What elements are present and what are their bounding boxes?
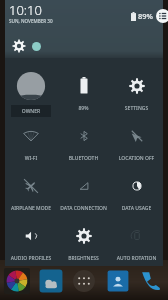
staticText: OWNER: [11, 108, 51, 115]
button[interactable]: Current user: [32, 42, 41, 51]
staticText: AUTO ROTATION: [110, 255, 163, 262]
button[interactable]: BRIGHTNESS: [57, 208, 110, 258]
staticText: DATA USAGE: [110, 205, 163, 212]
staticText: 10:10: [9, 1, 42, 19]
staticText: AUDIO PROFILES: [5, 255, 57, 262]
button[interactable]: DATA CONNECTION: [57, 158, 110, 208]
button[interactable]: 89%: [57, 58, 110, 108]
button[interactable]: AIRPLANE MODE: [5, 158, 57, 208]
button[interactable]: SETTINGS: [110, 58, 163, 108]
button[interactable]: DATA USAGE: [110, 158, 163, 208]
button[interactable]: Weather: [38, 268, 64, 294]
button[interactable]: Phone: [138, 268, 164, 294]
button[interactable]: Notification list: [156, 9, 168, 23]
button[interactable]: Contacts: [105, 268, 131, 294]
button[interactable]: Gallery: [4, 268, 30, 294]
button[interactable]: AUDIO PROFILES: [5, 208, 57, 258]
button[interactable]: LOCATION OFF: [110, 108, 163, 158]
button[interactable]: AUTO ROTATION: [110, 208, 163, 258]
staticText: BLUETOOTH: [57, 155, 110, 162]
staticText: WI-FI: [5, 155, 57, 162]
staticText: LOCATION OFF: [110, 155, 163, 162]
staticText: 89%: [57, 105, 110, 112]
button[interactable]: Settings: [12, 39, 26, 53]
button[interactable]: All apps: [71, 268, 97, 294]
staticText: BRIGHTNESS: [57, 255, 110, 262]
button[interactable]: BLUETOOTH: [57, 108, 110, 158]
staticText: 89%: [138, 11, 153, 21]
staticText: SETTINGS: [110, 105, 163, 112]
button[interactable]: OWNER: [5, 58, 57, 108]
staticText: SUN, NOVEMBER 30: [9, 18, 53, 24]
staticText: DATA CONNECTION: [57, 205, 110, 212]
button[interactable]: WI-FI: [5, 108, 57, 158]
staticText: AIRPLANE MODE: [5, 205, 57, 212]
